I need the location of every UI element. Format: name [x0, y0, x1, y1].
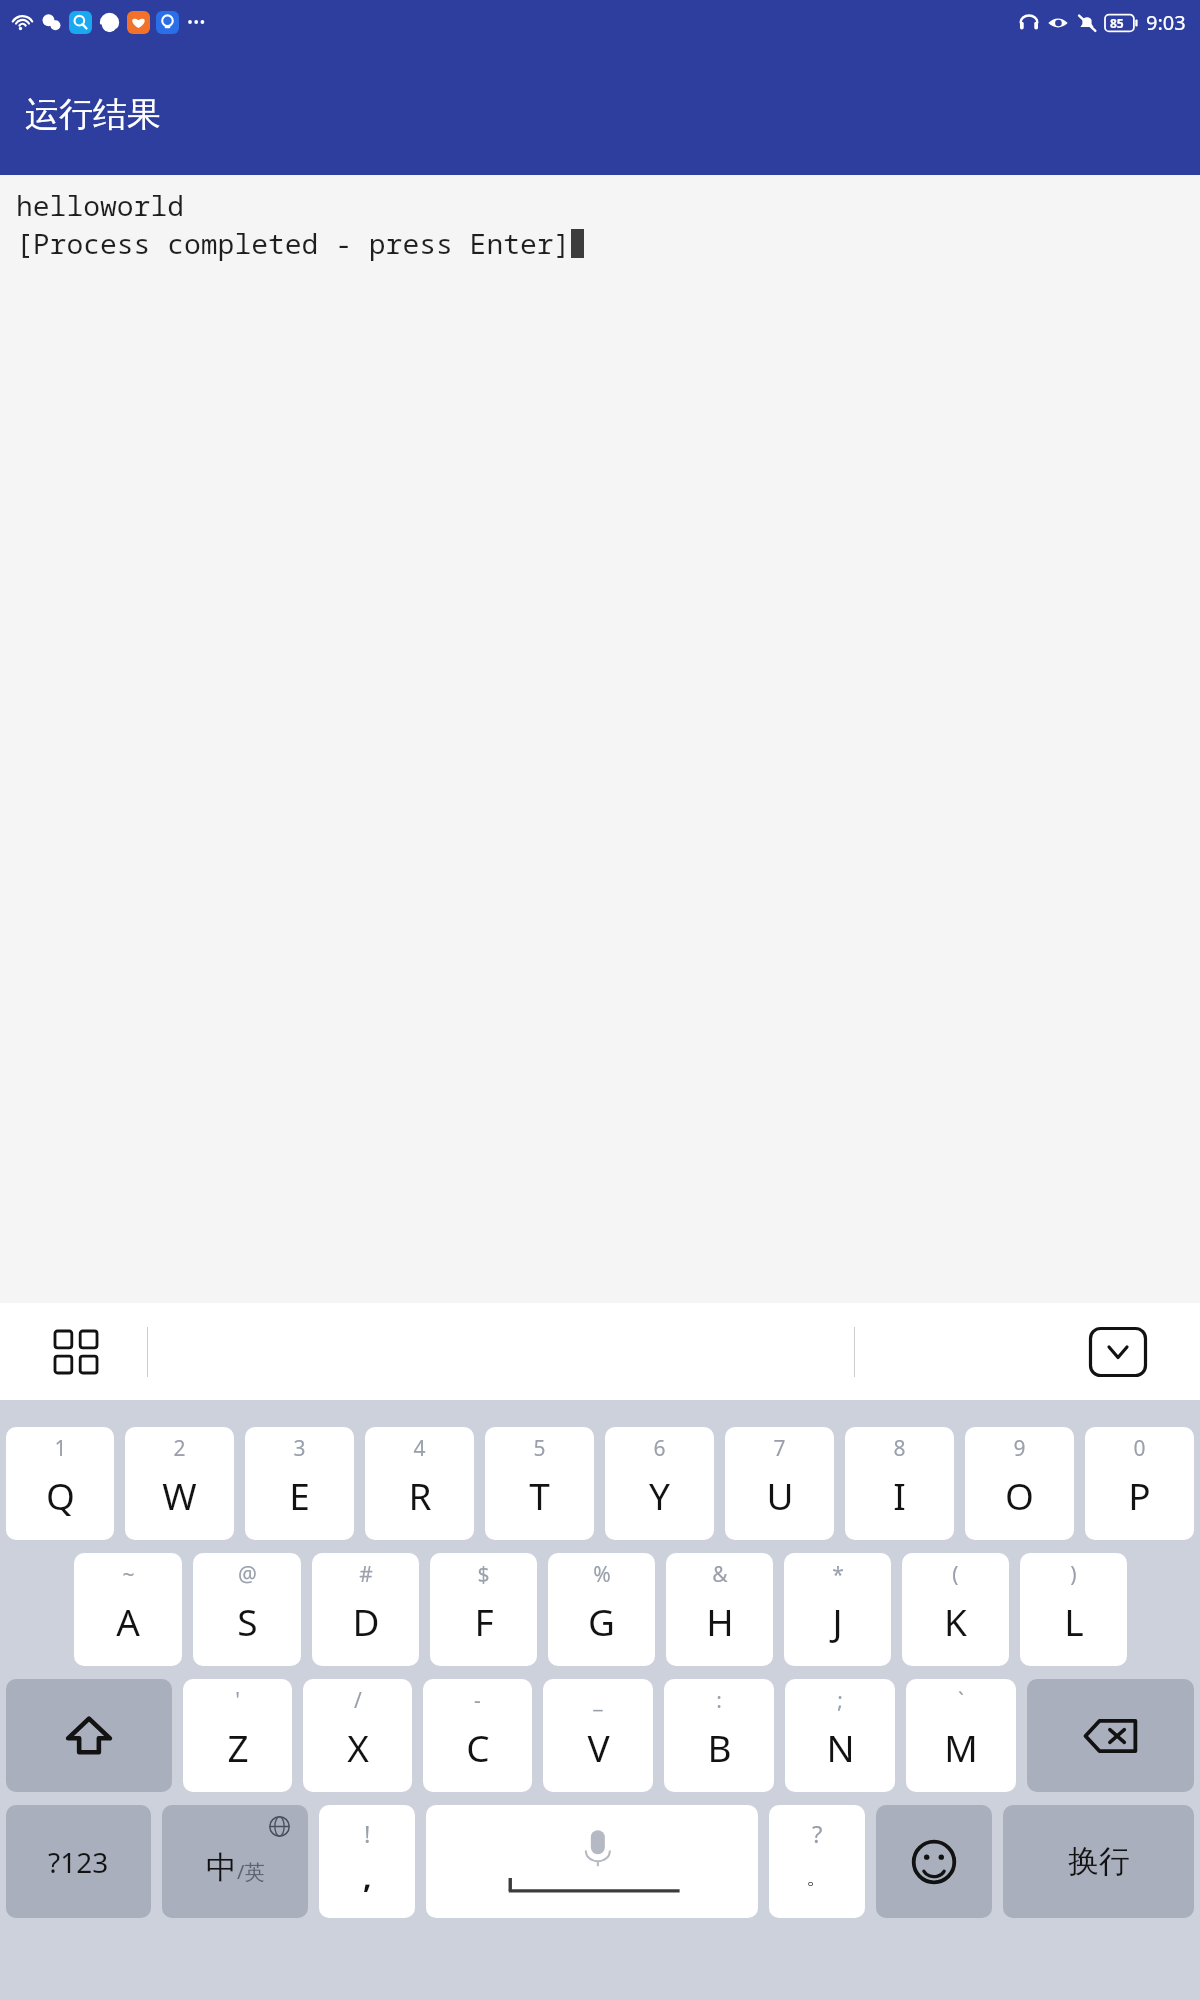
staticText: R	[408, 1470, 432, 1520]
staticText: 中	[206, 1848, 237, 1887]
staticText: ?123	[48, 1843, 109, 1881]
staticText: ?	[812, 1817, 823, 1850]
staticText: #	[359, 1560, 373, 1589]
button[interactable]: '	[183, 1679, 292, 1792]
button[interactable]: /	[303, 1679, 412, 1792]
button[interactable]: 0	[1085, 1427, 1194, 1540]
button[interactable]: (	[902, 1553, 1009, 1666]
staticText: '	[235, 1686, 240, 1715]
staticText: S	[237, 1596, 258, 1646]
button[interactable]: *	[784, 1553, 891, 1666]
staticText: J	[832, 1596, 843, 1646]
button[interactable]: Keyboard panels	[46, 1322, 106, 1382]
button[interactable]: 中	[162, 1805, 308, 1918]
staticText: T	[529, 1470, 550, 1520]
button[interactable]: ~	[74, 1553, 182, 1666]
staticText: M	[944, 1722, 978, 1772]
staticText: V	[587, 1722, 610, 1772]
staticText: `	[958, 1686, 964, 1715]
staticText: ~	[122, 1560, 135, 1589]
staticText: E	[289, 1470, 310, 1520]
staticText: 0	[1133, 1434, 1146, 1463]
staticText: 。	[806, 1863, 828, 1891]
button[interactable]: ;	[785, 1679, 895, 1792]
staticText: @	[238, 1560, 257, 1589]
staticText: H	[706, 1596, 734, 1646]
staticText: /	[354, 1686, 362, 1715]
button[interactable]: _	[543, 1679, 653, 1792]
button[interactable]: !	[319, 1805, 415, 1918]
staticText: 9:03	[1146, 9, 1186, 36]
button[interactable]: 1	[6, 1427, 114, 1540]
staticText: helloworld	[16, 186, 185, 224]
staticText: )	[1070, 1560, 1077, 1589]
staticText: G	[588, 1596, 615, 1646]
button[interactable]: Emoji	[876, 1805, 992, 1918]
staticText: I	[893, 1470, 906, 1520]
button[interactable]: `	[906, 1679, 1016, 1792]
staticText: 8	[893, 1434, 906, 1463]
staticText: 7	[773, 1434, 786, 1463]
staticText: U	[766, 1470, 794, 1520]
staticText: W	[162, 1470, 197, 1520]
staticText: %	[593, 1560, 611, 1589]
button[interactable]: @	[193, 1553, 301, 1666]
staticText: !	[364, 1817, 371, 1850]
button[interactable]: %	[548, 1553, 655, 1666]
button[interactable]: 换行	[1003, 1805, 1194, 1918]
staticText: &	[712, 1560, 728, 1589]
staticText: B	[707, 1722, 732, 1772]
staticText: 5	[533, 1434, 546, 1463]
button[interactable]: 4	[365, 1427, 474, 1540]
button[interactable]: 6	[605, 1427, 714, 1540]
staticText: -	[474, 1686, 481, 1715]
staticText: 1	[54, 1434, 67, 1463]
staticText: 6	[653, 1434, 666, 1463]
button[interactable]: -	[423, 1679, 532, 1792]
staticText: Q	[46, 1470, 75, 1520]
button[interactable]: Space	[426, 1805, 758, 1918]
button[interactable]: 8	[845, 1427, 954, 1540]
staticText: P	[1128, 1470, 1151, 1520]
button[interactable]: 7	[725, 1427, 834, 1540]
staticText: N	[826, 1722, 855, 1772]
staticText: 85	[1110, 15, 1124, 31]
button[interactable]: Backspace	[1027, 1679, 1194, 1792]
staticText: K	[944, 1596, 967, 1646]
staticText: *	[832, 1560, 844, 1589]
button[interactable]: ?123	[6, 1805, 151, 1918]
button[interactable]: 9	[965, 1427, 1074, 1540]
staticText: 运行结果	[25, 93, 161, 136]
staticText: O	[1005, 1470, 1034, 1520]
staticText: Z	[227, 1722, 249, 1772]
button[interactable]: ?	[769, 1805, 865, 1918]
button[interactable]: 2	[125, 1427, 234, 1540]
button[interactable]: &	[666, 1553, 773, 1666]
staticText: A	[116, 1596, 140, 1646]
button[interactable]: $	[430, 1553, 537, 1666]
staticText: ,	[363, 1856, 372, 1897]
staticText: X	[347, 1722, 369, 1772]
staticText: C	[466, 1722, 490, 1772]
button[interactable]: Hide keyboard	[1089, 1327, 1147, 1377]
button[interactable]: 5	[485, 1427, 594, 1540]
button[interactable]: )	[1020, 1553, 1127, 1666]
staticText: 9	[1013, 1434, 1026, 1463]
staticText: Y	[649, 1470, 670, 1520]
staticText: 3	[293, 1434, 306, 1463]
staticText: 2	[173, 1434, 186, 1463]
staticText: 换行	[1068, 1842, 1130, 1881]
staticText: /英	[237, 1858, 265, 1885]
staticText: :	[716, 1686, 722, 1715]
button[interactable]: Shift	[6, 1679, 172, 1792]
staticText: L	[1064, 1596, 1084, 1646]
staticText: (	[952, 1560, 959, 1589]
button[interactable]: :	[664, 1679, 774, 1792]
staticText: 4	[413, 1434, 426, 1463]
staticText: D	[352, 1596, 380, 1646]
staticText: _	[593, 1686, 603, 1715]
staticText: $	[477, 1560, 490, 1589]
staticText: F	[474, 1596, 494, 1646]
button[interactable]: 3	[245, 1427, 354, 1540]
button[interactable]: #	[312, 1553, 419, 1666]
